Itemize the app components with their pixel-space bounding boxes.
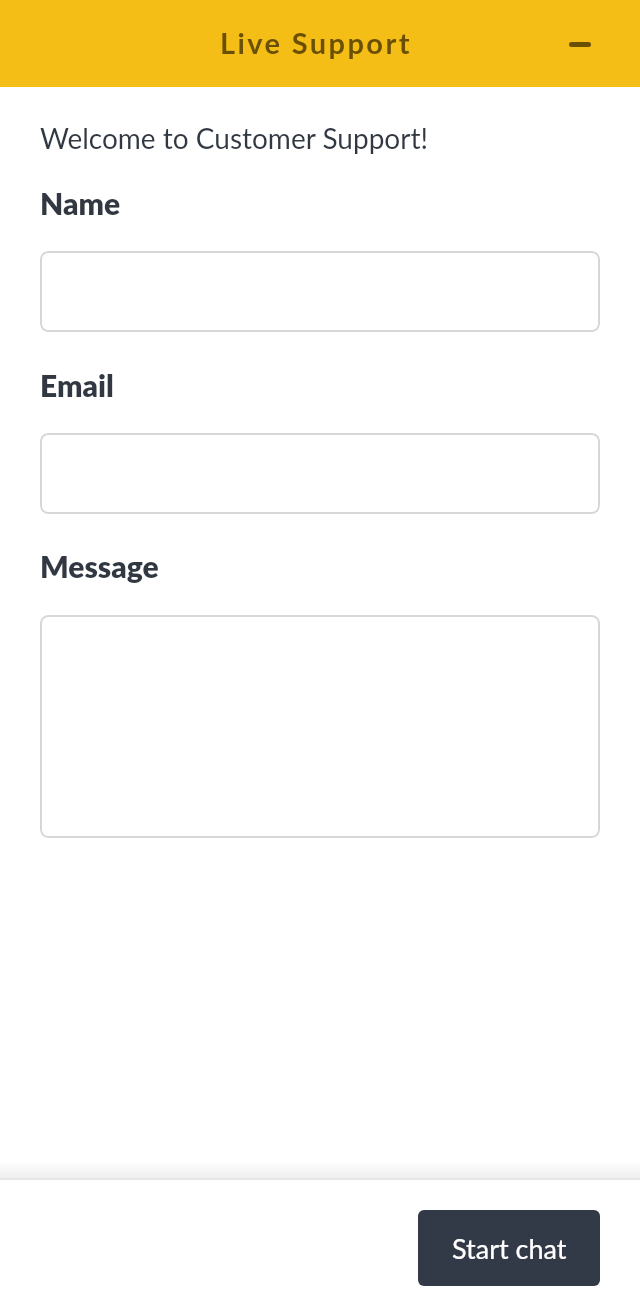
staticText: Live Support (220, 25, 412, 60)
button[interactable]: Start chat (418, 1210, 600, 1286)
staticText: Email (40, 367, 114, 403)
staticText: Message (40, 548, 159, 584)
button[interactable]: Name input field (40, 251, 600, 332)
staticText: Name (40, 185, 121, 221)
button[interactable]: Message input field (40, 615, 600, 838)
button[interactable]: Minimize chat (556, 20, 604, 68)
staticText: Start chat (452, 1232, 567, 1264)
button[interactable]: Email input field (40, 433, 600, 514)
staticText: Welcome to Customer Support! (40, 121, 428, 155)
